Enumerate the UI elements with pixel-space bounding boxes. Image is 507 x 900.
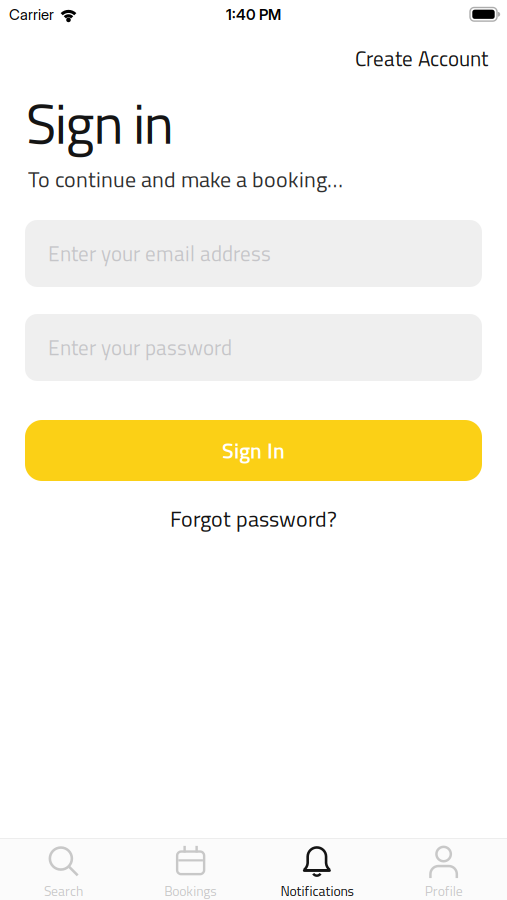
staticText: Search xyxy=(44,881,83,900)
staticText: Enter your email address xyxy=(48,237,271,269)
button[interactable]: Search xyxy=(0,838,127,900)
button[interactable]: Create Account xyxy=(0,42,507,74)
staticText: Notifications xyxy=(280,881,353,900)
staticText: Create Account xyxy=(355,42,488,74)
button[interactable]: Profile xyxy=(380,838,507,900)
staticText: Sign in xyxy=(26,80,174,166)
button[interactable]: Enter your password xyxy=(25,314,482,381)
button[interactable]: Bookings xyxy=(127,838,254,900)
button[interactable]: Sign In xyxy=(25,420,482,481)
staticText: Sign In xyxy=(222,434,285,467)
staticText: Profile xyxy=(425,881,463,900)
staticText: Forgot password? xyxy=(170,502,337,535)
staticText: To continue and make a booking… xyxy=(28,162,343,196)
button[interactable]: Notifications xyxy=(253,838,380,900)
button[interactable]: Forgot password? xyxy=(170,502,337,535)
staticText: Carrier xyxy=(9,5,54,23)
staticText: 1:40 PM xyxy=(226,5,281,23)
button[interactable]: Enter your email address xyxy=(25,220,482,287)
staticText: Enter your password xyxy=(48,331,232,363)
staticText: Bookings xyxy=(164,881,216,900)
